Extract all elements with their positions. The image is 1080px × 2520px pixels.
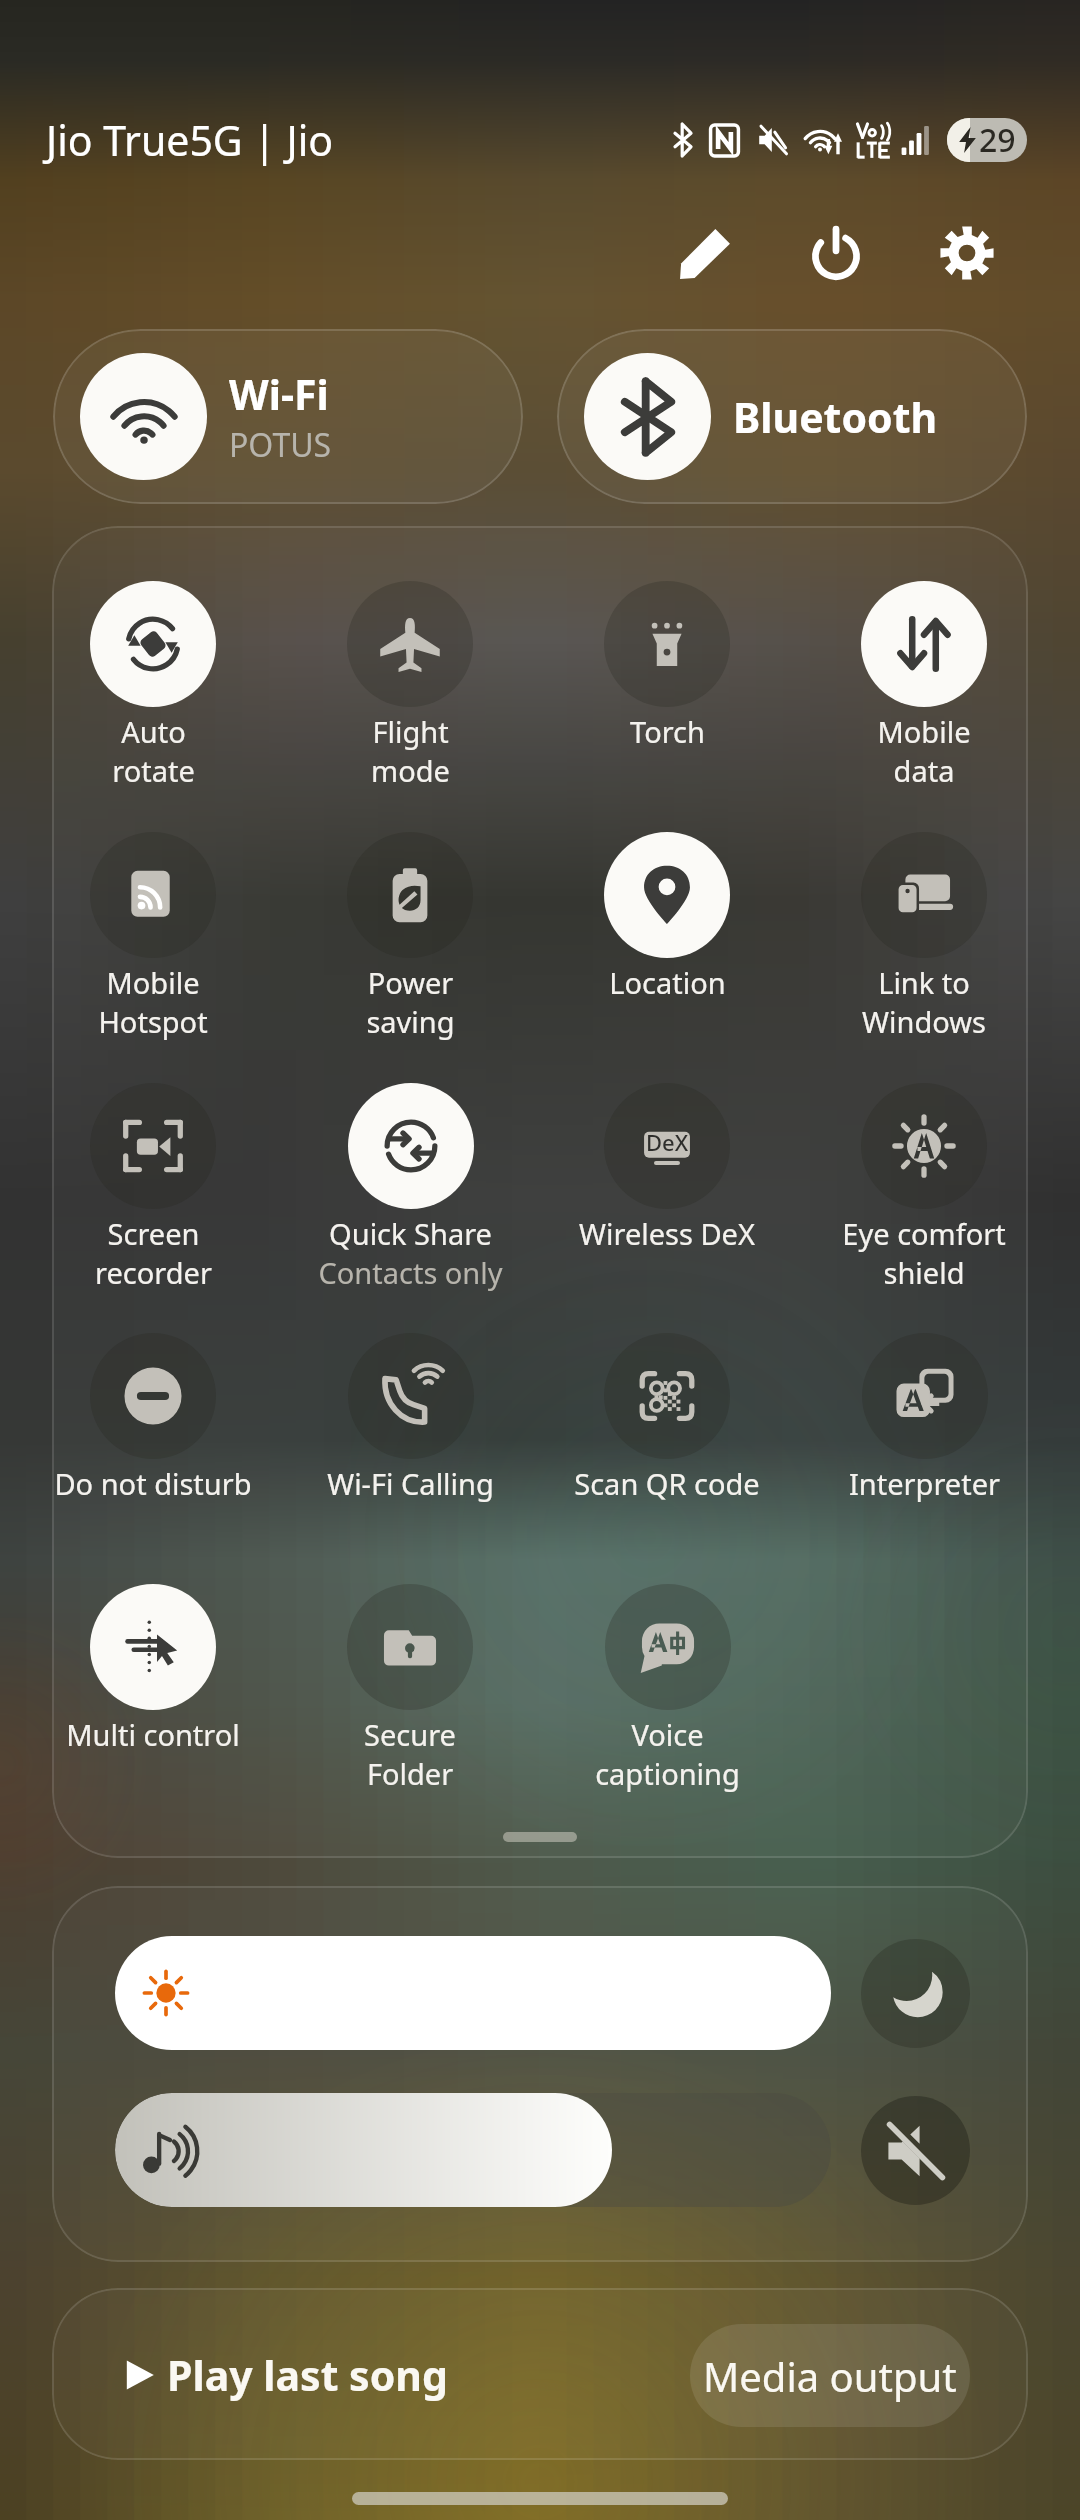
button[interactable]: Flight mode — [288, 581, 532, 821]
button[interactable]: Bluetooth — [557, 329, 1027, 504]
button[interactable]: Auto rotate — [31, 581, 275, 821]
button[interactable]: Mute — [861, 2096, 970, 2205]
staticText: Scan QR code — [574, 1464, 760, 1503]
staticText: Auto rotate — [112, 712, 195, 790]
button[interactable]: Play last song — [109, 2330, 464, 2420]
button[interactable]: Volume — [115, 2093, 831, 2207]
button[interactable]: Wi-Fi Calling — [288, 1333, 532, 1573]
button[interactable]: Torch — [545, 581, 789, 821]
staticText: Do not disturb — [54, 1464, 252, 1503]
button[interactable]: Eye comfort shield — [802, 1083, 1046, 1323]
staticText: Mobile Hotspot — [98, 963, 208, 1041]
staticText: Wi-Fi Calling — [327, 1464, 494, 1503]
button[interactable]: Secure Folder — [288, 1584, 532, 1824]
button[interactable]: Edit quick settings — [661, 209, 749, 297]
button[interactable]: Wi-Fi — [53, 329, 523, 504]
button[interactable]: Mobile Hotspot — [31, 832, 275, 1072]
staticText: Secure Folder — [364, 1715, 456, 1793]
button[interactable]: Interpreter — [802, 1333, 1046, 1573]
staticText: Location — [609, 963, 726, 1002]
staticText: Jio True5G | Jio — [46, 112, 334, 168]
staticText: Multi control — [66, 1715, 240, 1754]
staticText: Media output — [703, 2349, 957, 2403]
button[interactable]: Scan QR code — [545, 1333, 789, 1573]
staticText: POTUS — [229, 423, 332, 467]
staticText: Play last song — [167, 2347, 448, 2403]
button[interactable]: Location — [545, 832, 789, 1072]
button[interactable]: Power saving — [288, 832, 532, 1072]
staticText: Wireless DeX — [579, 1214, 755, 1253]
staticText: Wi-Fi — [229, 366, 329, 422]
staticText: DeX — [646, 1127, 689, 1157]
staticText: Eye comfort shield — [842, 1214, 1006, 1292]
button[interactable]: Multi control — [31, 1584, 275, 1824]
button[interactable]: Settings — [923, 209, 1011, 297]
button[interactable]: Night mode — [861, 1939, 970, 2048]
button[interactable]: Power — [792, 209, 880, 297]
staticText: Voice captioning — [595, 1715, 740, 1793]
staticText: Contacts only — [318, 1253, 503, 1292]
button[interactable]: Media output — [690, 2324, 970, 2427]
staticText: Screen recorder — [95, 1214, 212, 1292]
staticText: Mobile data — [877, 712, 971, 790]
button[interactable]: Mobile data — [802, 581, 1046, 821]
button[interactable]: Voice captioning — [545, 1584, 789, 1824]
button[interactable]: Do not disturb — [31, 1333, 275, 1573]
button[interactable]: Quick Share — [288, 1083, 532, 1323]
staticText: Interpreter — [849, 1464, 1000, 1503]
button[interactable]: Link to Windows — [802, 832, 1046, 1072]
staticText: Flight mode — [371, 712, 450, 790]
button[interactable]: Screen recorder — [31, 1083, 275, 1323]
staticText: Bluetooth — [733, 389, 938, 445]
staticText: 29 — [979, 118, 1016, 162]
staticText: Link to Windows — [862, 963, 986, 1041]
staticText: Quick Share — [329, 1214, 492, 1253]
button[interactable]: DeX — [545, 1083, 789, 1323]
staticText: Power saving — [366, 963, 455, 1041]
staticText: Torch — [630, 712, 705, 751]
button[interactable] — [115, 1936, 831, 2050]
